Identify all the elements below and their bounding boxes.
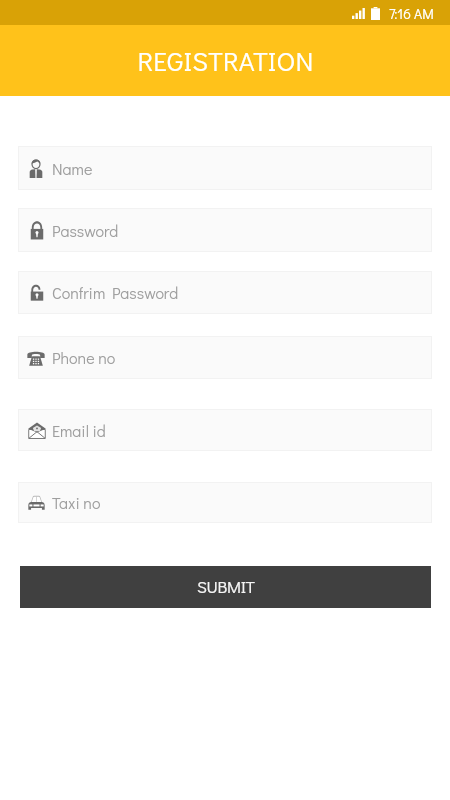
other: Signal <box>352 8 366 19</box>
button[interactable]: Password <box>18 208 432 252</box>
button[interactable]: Taxi no <box>18 482 432 523</box>
staticText: REGISTRATION <box>137 43 314 78</box>
staticText: SUBMIT <box>197 575 255 597</box>
staticText: Name <box>52 158 93 179</box>
staticText: Taxi no <box>52 492 101 513</box>
button[interactable]: Name <box>18 146 432 190</box>
staticText: Email id <box>52 420 106 441</box>
button[interactable]: SUBMIT <box>20 566 431 608</box>
other: Battery <box>371 7 380 20</box>
staticText: Password <box>52 220 119 241</box>
staticText: Phone no <box>52 347 116 368</box>
staticText: Confrim Password <box>52 282 179 303</box>
button[interactable]: Email id <box>18 409 432 451</box>
staticText: 7:16 AM <box>389 4 434 22</box>
button[interactable]: Phone no <box>18 336 432 379</box>
button[interactable]: Confrim Password <box>18 271 432 314</box>
